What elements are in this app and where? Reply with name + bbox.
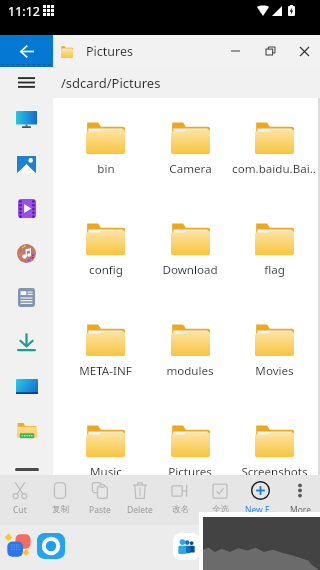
button[interactable]: Minimize: [217, 35, 253, 67]
button[interactable]: Download: [148, 220, 232, 278]
staticText: Paste: [89, 504, 111, 516]
button[interactable]: Music: [63, 422, 148, 475]
staticText: /sdcard/Pictures: [61, 74, 161, 92]
staticText: 11:12: [8, 3, 40, 20]
button[interactable]: New F…: [240, 475, 280, 525]
button[interactable]: Menu: [0, 67, 53, 98]
button[interactable]: 全选: [200, 475, 240, 525]
button[interactable]: com.baidu.Bai…: [232, 119, 316, 177]
staticText: 改名: [172, 504, 189, 515]
staticText: com.baidu.Bai…: [232, 161, 316, 177]
staticText: Pictures: [86, 43, 133, 60]
button[interactable]: Category 1: [0, 97, 53, 141]
button[interactable]: bin: [63, 119, 148, 177]
button[interactable]: Category 8: [0, 409, 53, 453]
staticText: bin: [97, 161, 115, 177]
staticText: 复制: [52, 504, 69, 515]
button[interactable]: Contacts: [173, 533, 200, 560]
button[interactable]: 复制: [40, 475, 80, 525]
staticText: Pictures: [168, 464, 212, 475]
button[interactable]: Pictures: [148, 422, 232, 475]
button[interactable]: Movies: [232, 321, 316, 379]
button[interactable]: Restore: [253, 35, 288, 67]
button[interactable]: Category 5: [0, 275, 53, 319]
button[interactable]: Category 2: [0, 142, 53, 186]
button[interactable]: Screenshots: [232, 422, 316, 475]
staticText: New F…: [245, 504, 276, 516]
staticText: modules: [166, 363, 214, 379]
staticText: Delete: [127, 504, 153, 516]
button[interactable]: config: [63, 220, 148, 278]
button[interactable]: Category 7: [0, 364, 53, 408]
button[interactable]: Back: [0, 35, 53, 67]
staticText: config: [89, 262, 123, 278]
button[interactable]: flag: [232, 220, 316, 278]
button[interactable]: 改名: [160, 475, 200, 525]
staticText: Cut: [13, 504, 27, 516]
button[interactable]: More: [280, 475, 320, 525]
button[interactable]: Category 6: [0, 320, 53, 364]
staticText: More: [290, 504, 311, 516]
button[interactable]: Paste: [80, 475, 120, 525]
staticText: Camera: [169, 161, 212, 177]
button[interactable]: Close: [288, 35, 320, 67]
button[interactable]: Camera app: [37, 533, 65, 559]
button[interactable]: Category 4: [0, 231, 53, 275]
button[interactable]: Category 3: [0, 186, 53, 230]
staticText: META-INF: [79, 363, 132, 379]
staticText: Download: [162, 262, 218, 278]
button[interactable]: Camera: [148, 119, 232, 177]
staticText: flag: [264, 262, 285, 278]
button[interactable]: modules: [148, 321, 232, 379]
staticText: 全选: [212, 504, 229, 515]
staticText: Music: [90, 464, 122, 475]
staticText: Screenshots: [241, 464, 308, 475]
staticText: Movies: [255, 363, 294, 379]
button[interactable]: Launcher app: [5, 532, 34, 560]
button[interactable]: Delete: [120, 475, 160, 525]
button[interactable]: META-INF: [63, 321, 148, 379]
button[interactable]: Cut: [0, 475, 40, 525]
